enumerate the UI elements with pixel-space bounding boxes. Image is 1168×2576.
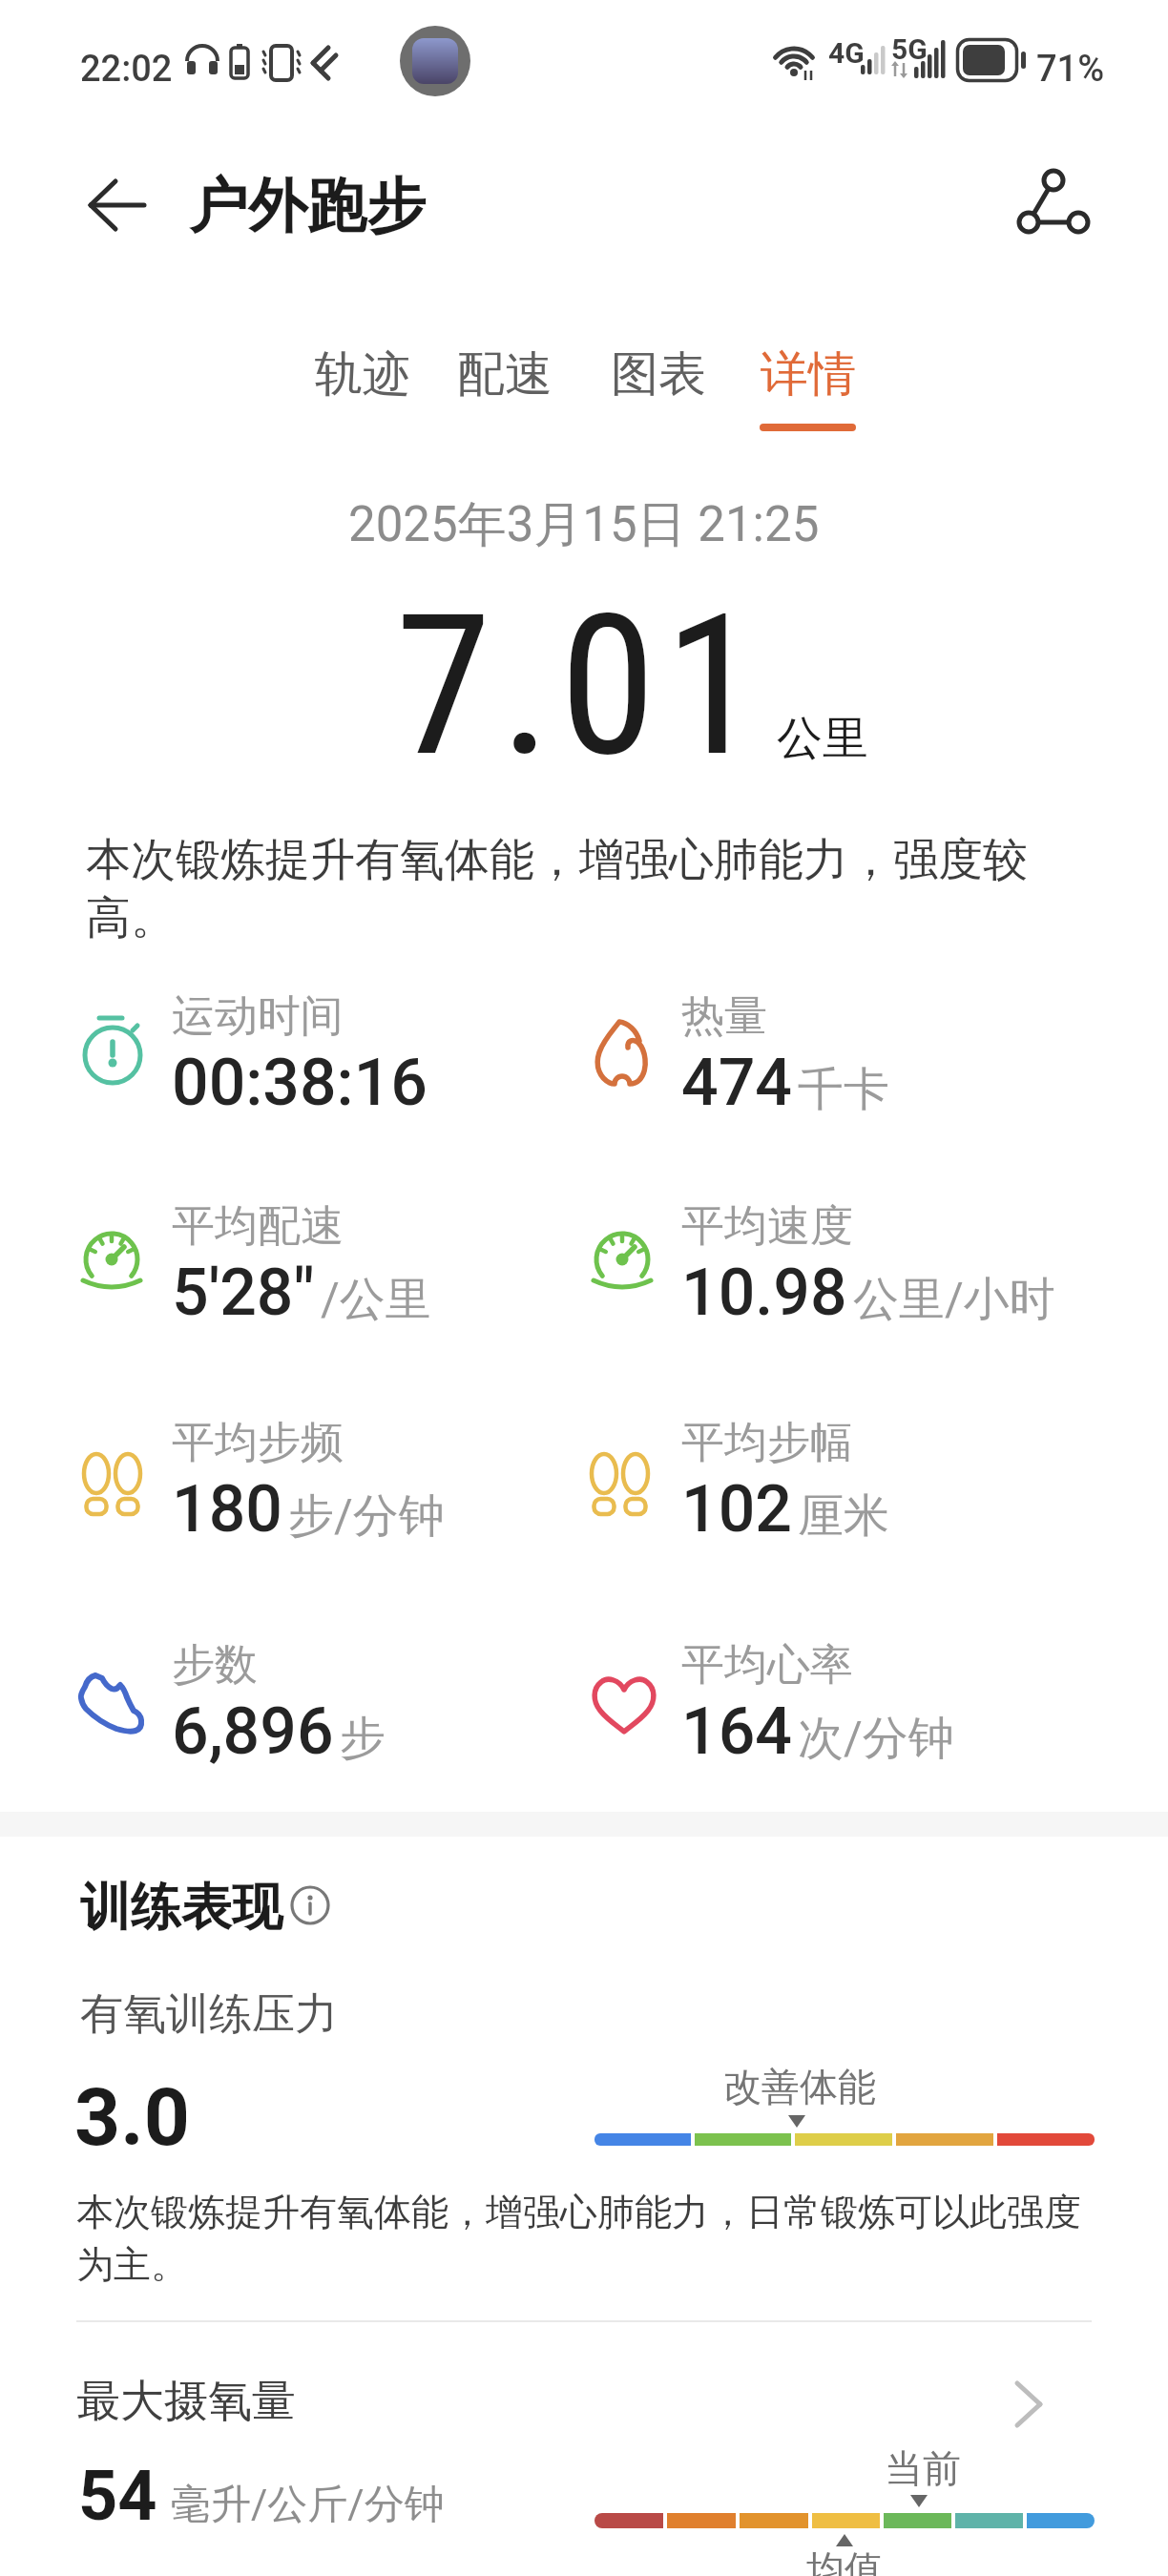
staticText: /公里 <box>321 1271 431 1328</box>
staticText: 公里 <box>777 710 868 767</box>
staticText: 改善体能 <box>723 2063 876 2110</box>
staticText: 164 <box>681 1693 792 1770</box>
staticText: 平均步幅 <box>681 1416 853 1470</box>
button[interactable]: 图表 <box>587 326 730 422</box>
staticText: 22:02 <box>80 48 173 91</box>
staticText: 当前 <box>885 2444 961 2492</box>
staticText: 最大摄氧量 <box>76 2374 296 2429</box>
staticText: 毫升/公斤/分钟 <box>171 2480 445 2530</box>
staticText: 步/分钟 <box>288 1487 445 1545</box>
staticText: 步数 <box>172 1638 258 1693</box>
staticText: 为主。 <box>76 2241 188 2288</box>
staticText: 2025年3月15日 21:25 <box>348 494 820 555</box>
staticText: 7.01 <box>395 571 769 800</box>
staticText: 详情 <box>761 344 856 405</box>
button[interactable] <box>67 162 162 248</box>
staticText: 54 <box>78 2456 157 2536</box>
staticText: 公里/小时 <box>853 1271 1055 1328</box>
staticText: 本次锻炼提升有氧体能，增强心肺能力，日常锻炼可以此强度 <box>76 2189 1081 2235</box>
staticText: 次/分钟 <box>798 1710 954 1767</box>
staticText: 6,896 <box>172 1693 334 1770</box>
staticText: 本次锻炼提升有氧体能，增强心肺能力，强度较 <box>86 832 1028 888</box>
staticText: 平均配速 <box>172 1199 344 1254</box>
staticText: 平均步频 <box>172 1416 344 1470</box>
staticText: 5G <box>891 32 928 66</box>
staticText: 180 <box>172 1471 282 1548</box>
staticText: 热量 <box>681 989 767 1044</box>
staticText: 平均速度 <box>681 1199 853 1254</box>
staticText: 71% <box>1036 48 1105 91</box>
button[interactable]: 轨迹 <box>291 326 434 422</box>
staticText: 轨迹 <box>315 344 410 405</box>
button[interactable] <box>286 1881 334 1929</box>
staticText: 步 <box>340 1710 386 1767</box>
staticText: 474 <box>681 1045 792 1121</box>
staticText: 训练表现 <box>80 1876 282 1940</box>
staticText: 3.0 <box>74 2070 190 2164</box>
button[interactable]: 详情 <box>737 326 880 422</box>
staticText: 高。 <box>86 890 176 946</box>
staticText: 户外跑步 <box>189 169 426 243</box>
staticText: 平均心率 <box>681 1638 853 1693</box>
staticText: 有氧训练压力 <box>80 1987 338 2042</box>
staticText: 00:38:16 <box>172 1045 428 1121</box>
staticText: 运动时间 <box>172 989 344 1044</box>
staticText: 配速 <box>457 344 553 405</box>
staticText: 千卡 <box>798 1061 889 1118</box>
staticText: 5'28" <box>172 1255 315 1331</box>
staticText: 4G <box>828 36 865 70</box>
staticText: 102 <box>681 1471 792 1548</box>
button[interactable] <box>1002 153 1107 252</box>
button[interactable]: 配速 <box>433 326 576 422</box>
staticText: 均值 <box>806 2545 883 2576</box>
button[interactable] <box>57 2353 1111 2448</box>
staticText: 厘米 <box>798 1487 889 1545</box>
staticText: 10.98 <box>681 1255 847 1331</box>
staticText: 图表 <box>611 344 706 405</box>
